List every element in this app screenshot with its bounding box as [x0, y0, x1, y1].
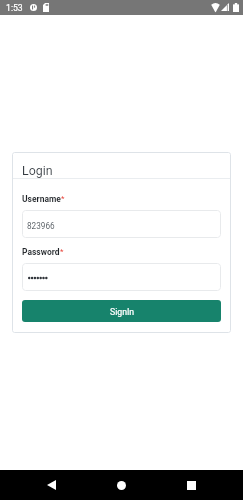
staticText: * — [60, 247, 64, 256]
staticText: 823966 — [27, 221, 55, 231]
button[interactable]: SignIn — [22, 300, 221, 322]
staticText: SignIn — [110, 307, 135, 317]
staticText: * — [61, 194, 65, 203]
button[interactable]: Home — [98, 470, 144, 500]
staticText: Password — [22, 247, 60, 257]
staticText: 1:53 — [6, 3, 23, 13]
button[interactable]: Recent apps — [168, 470, 214, 500]
button[interactable]: 823966 — [22, 210, 221, 238]
button[interactable]: Back — [28, 470, 74, 500]
staticText: Login — [22, 163, 53, 178]
button[interactable] — [22, 263, 221, 291]
staticText: Username — [22, 194, 61, 204]
